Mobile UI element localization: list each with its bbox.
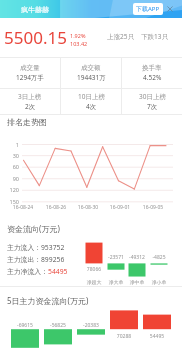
staticText: 成交额 xyxy=(81,64,101,72)
staticText: 103.42 xyxy=(70,40,88,47)
button[interactable]: 成交额 xyxy=(61,58,121,88)
staticText: 主力流入：953752 xyxy=(7,243,65,252)
staticText: 54495 xyxy=(48,267,68,276)
staticText: 10日上榜 xyxy=(78,92,105,101)
staticText: 主力流出：899256 xyxy=(7,255,65,264)
staticText: 4.52% xyxy=(143,73,162,82)
staticText: 60 xyxy=(0,163,19,170)
staticText: 3日上榜 xyxy=(18,92,42,101)
staticText: 净小单 xyxy=(143,279,175,285)
staticText: 30 xyxy=(0,152,19,159)
button[interactable]: 下载APP xyxy=(133,3,163,15)
staticText: 净大单 xyxy=(100,279,132,285)
staticText: 16-08-24 xyxy=(5,204,41,211)
staticText: 194431万 xyxy=(77,73,106,82)
button[interactable]: 换手率 xyxy=(122,58,182,88)
button[interactable]: 30日上榜 xyxy=(122,89,182,114)
staticText: 疯牛赫赫 xyxy=(21,5,49,14)
staticText: 资金流向(万元) xyxy=(7,223,60,234)
button[interactable]: 3日上榜 xyxy=(0,89,60,114)
staticText: 16-08-26 xyxy=(38,204,74,211)
staticText: 78066 xyxy=(78,266,110,273)
button[interactable]: 成交量 xyxy=(0,58,60,88)
staticText: 下载APP xyxy=(136,5,160,13)
staticText: 120 xyxy=(0,186,19,193)
staticText: 净超大 xyxy=(78,279,110,285)
button[interactable]: 关闭 xyxy=(166,5,174,13)
staticText: 13 xyxy=(154,32,162,41)
staticText: -69615 xyxy=(8,322,42,329)
staticText: 5500.15 xyxy=(4,26,67,49)
staticText: 主力净流入： xyxy=(7,267,48,276)
staticText: 1 xyxy=(0,141,19,148)
staticText: 2次 xyxy=(25,102,36,111)
staticText: -4825 xyxy=(143,254,175,261)
staticText: 净中单 xyxy=(121,279,153,285)
staticText: 上涨 xyxy=(107,33,120,41)
staticText: 成交量 xyxy=(20,64,40,72)
staticText: -56825 xyxy=(41,322,75,329)
staticText: 换手率 xyxy=(142,64,162,72)
staticText: 只 xyxy=(128,33,135,41)
staticText: 1.92% xyxy=(70,32,86,39)
button[interactable]: 10日上榜 xyxy=(61,89,121,114)
staticText: 16-09-05 xyxy=(135,204,171,211)
staticText: 150 xyxy=(0,198,19,205)
staticText: -49312 xyxy=(121,254,153,261)
staticText: 只 xyxy=(162,33,169,41)
staticText: -20383 xyxy=(74,322,108,329)
staticText: 16-09-01 xyxy=(102,204,138,211)
staticText: 5日主力资金流向(万元) xyxy=(7,295,89,306)
staticText: 1294万手 xyxy=(16,73,44,82)
staticText: 90 xyxy=(0,175,19,182)
staticText: 16-08-30 xyxy=(70,204,106,211)
staticText: 30日上榜 xyxy=(139,92,166,101)
staticText: 4次 xyxy=(86,102,97,111)
staticText: 排名走势图 xyxy=(7,117,47,127)
staticText: 54495 xyxy=(140,333,174,340)
staticText: 25 xyxy=(120,32,128,41)
staticText: 下跌 xyxy=(141,33,154,41)
staticText: -23571 xyxy=(100,254,132,261)
staticText: 7次 xyxy=(147,102,158,111)
staticText: 70288 xyxy=(107,333,141,340)
